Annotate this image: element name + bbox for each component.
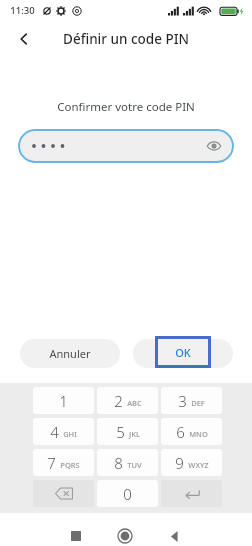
button[interactable]: Back <box>160 522 188 546</box>
button[interactable]: Show PIN <box>202 134 226 158</box>
staticText: 1 <box>59 391 68 411</box>
button[interactable]: Annuler <box>20 339 120 368</box>
staticText: JKL <box>129 429 140 439</box>
button[interactable]: 8 <box>97 449 158 476</box>
staticText: DEF <box>191 398 205 408</box>
staticText: 2 <box>114 391 123 411</box>
staticText: 4 <box>50 422 59 442</box>
button[interactable]: Back <box>8 22 40 56</box>
staticText: 3 <box>178 391 187 411</box>
staticText: 0 <box>123 484 132 504</box>
staticText: GHI <box>63 429 77 439</box>
button[interactable] <box>133 339 233 368</box>
button[interactable]: Backspace <box>33 480 94 507</box>
staticText: 5 <box>116 422 125 442</box>
button[interactable]: 5 <box>97 418 158 445</box>
button[interactable]: Recent apps <box>62 522 90 546</box>
button[interactable]: 6 <box>161 418 222 445</box>
staticText: Définir un code PIN <box>63 30 189 48</box>
staticText: 8 <box>114 453 123 473</box>
staticText: 6 <box>176 422 185 442</box>
button[interactable]: 9 <box>161 449 222 476</box>
button[interactable]: 7 <box>33 449 94 476</box>
staticText: MNO <box>189 429 208 439</box>
button[interactable]: 4 <box>33 418 94 445</box>
staticText: WXYZ <box>188 460 209 470</box>
staticText: OK <box>175 345 191 360</box>
button[interactable]: 1 <box>33 387 94 414</box>
button[interactable]: Enter <box>161 480 222 507</box>
button[interactable]: 3 <box>161 387 222 414</box>
button[interactable]: Home <box>111 522 139 546</box>
staticText: 7 <box>47 453 56 473</box>
staticText: ABC <box>127 398 142 408</box>
staticText: Confirmer votre code PIN <box>57 99 195 115</box>
staticText: PQRS <box>60 460 80 470</box>
button[interactable]: 2 <box>97 387 158 414</box>
staticText: Annuler <box>49 346 91 361</box>
button[interactable]: Show PIN <box>18 129 234 163</box>
staticText: 11:30 <box>10 4 35 17</box>
button[interactable]: OK <box>155 336 211 368</box>
button[interactable]: 0 <box>97 480 158 507</box>
staticText: 9 <box>175 453 184 473</box>
staticText: TUV <box>127 460 142 470</box>
